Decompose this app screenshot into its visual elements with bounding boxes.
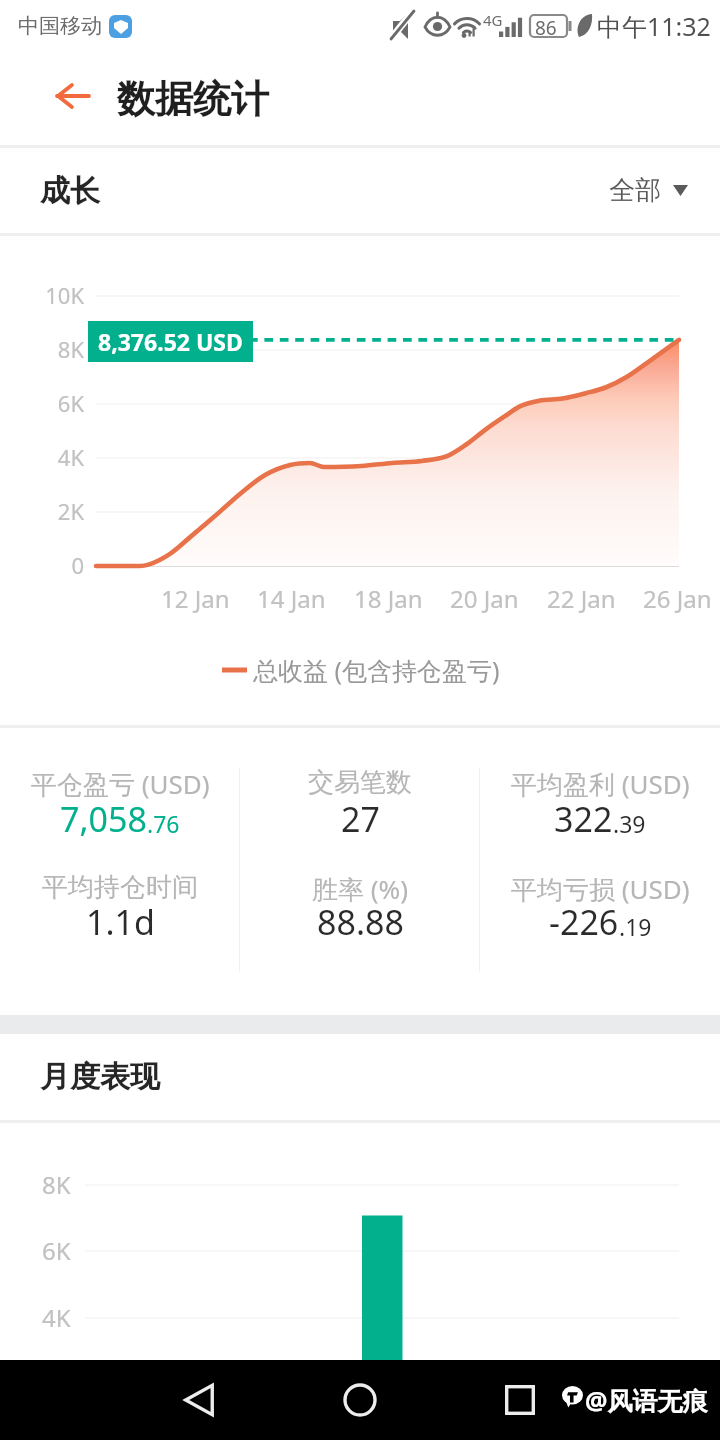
staticText: 7,058 (60, 796, 147, 842)
staticText: 4K (42, 1301, 71, 1334)
staticText: 2K (57, 496, 84, 526)
button[interactable]: Back (140, 1360, 260, 1440)
staticText: 平均亏损 (USD) (511, 871, 690, 907)
staticText: 平均盈利 (USD) (511, 766, 690, 802)
staticText: 全部 (609, 174, 661, 207)
staticText: 6K (42, 1234, 71, 1267)
staticText: 8K (42, 1168, 71, 1201)
staticText: .76 (147, 808, 180, 839)
staticText: 1.1d (86, 899, 155, 945)
staticText: 胜率 (%) (312, 871, 408, 907)
staticText: 平均持仓时间 (42, 871, 198, 904)
staticText: 4K (57, 442, 84, 472)
staticText: 平仓盈亏 (USD) (31, 766, 210, 802)
staticText: 6K (57, 388, 84, 418)
staticText: 322 (554, 796, 613, 842)
staticText: 8,376.52 USD (98, 326, 243, 357)
staticText: 26 Jan (643, 582, 712, 615)
staticText: 交易笔数 (308, 766, 412, 799)
staticText: 86 (535, 15, 557, 41)
staticText: 中国移动 (18, 13, 102, 39)
staticText: 12 Jan (161, 582, 230, 615)
staticText: 月度表现 (40, 1058, 160, 1096)
staticText: @风语无痕 (585, 1383, 708, 1417)
staticText: 8K (57, 334, 84, 364)
staticText: 10K (45, 280, 84, 310)
staticText: 总收益 (包含持仓盈亏) (253, 653, 500, 687)
button[interactable]: Home (300, 1360, 420, 1440)
button[interactable]: 全部 (609, 164, 688, 217)
staticText: 27 (341, 796, 380, 842)
staticText: 20 Jan (450, 582, 519, 615)
staticText: 88.88 (317, 899, 404, 945)
staticText: 数据统计 (117, 75, 269, 123)
staticText: .19 (619, 911, 652, 942)
staticText: 4G (483, 10, 503, 30)
staticText: 18 Jan (354, 582, 423, 615)
staticText: 0 (71, 550, 84, 580)
staticText: 中午11:32 (597, 9, 711, 43)
button[interactable]: Recents (460, 1360, 580, 1440)
staticText: 14 Jan (257, 582, 326, 615)
staticText: 成长 (40, 172, 100, 210)
staticText: .39 (613, 808, 646, 839)
staticText: 22 Jan (547, 582, 616, 615)
staticText: -226 (549, 899, 619, 945)
button[interactable]: Back (26, 52, 119, 145)
